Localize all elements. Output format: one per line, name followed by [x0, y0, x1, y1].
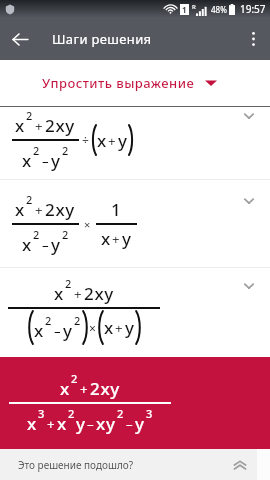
staticText: 2: [71, 371, 78, 386]
staticText: 1: [182, 4, 187, 15]
staticText: 2xy: [45, 198, 76, 221]
staticText: x: [54, 282, 64, 305]
staticText: y: [125, 316, 135, 339]
staticText: x: [104, 316, 114, 339]
staticText: +: [80, 380, 89, 398]
staticText: +: [112, 230, 121, 248]
staticText: y: [51, 233, 61, 256]
staticText: 2xy: [45, 114, 76, 137]
button[interactable]: x: [0, 357, 270, 449]
staticText: 1: [111, 198, 122, 221]
staticText: x: [97, 129, 107, 152]
staticText: +: [47, 415, 56, 433]
staticText: –: [126, 415, 134, 433]
staticText: x: [27, 412, 37, 435]
staticText: Это решение подошло?: [18, 458, 134, 472]
staticText: x: [34, 319, 44, 342]
staticText: x: [15, 198, 25, 221]
staticText: Упростить выражение: [42, 74, 195, 92]
staticText: +: [108, 132, 117, 150]
button[interactable]: Back: [0, 19, 40, 59]
staticText: +: [35, 117, 44, 135]
staticText: –: [42, 152, 50, 170]
staticText: ×: [84, 217, 91, 232]
staticText: y: [76, 412, 86, 435]
staticText: +: [74, 285, 83, 303]
staticText: x: [60, 377, 70, 400]
staticText: +: [115, 319, 124, 337]
staticText: –: [42, 236, 50, 254]
staticText: 48%: [211, 4, 227, 15]
staticText: 2: [26, 192, 33, 207]
staticText: –: [87, 415, 95, 433]
staticText: y: [63, 319, 73, 342]
staticText: 2: [65, 276, 72, 291]
staticText: 3: [146, 406, 153, 421]
staticText: 2: [45, 313, 52, 328]
staticText: y: [135, 412, 145, 435]
button[interactable]: Expand: [225, 450, 255, 480]
button[interactable]: More options: [236, 22, 270, 56]
staticText: Шаги решения: [52, 30, 152, 48]
staticText: 2: [33, 227, 40, 242]
staticText: y: [51, 149, 61, 172]
staticText: 2xy: [90, 377, 121, 400]
button[interactable]: x: [0, 268, 270, 357]
staticText: ÷: [82, 132, 89, 148]
staticText: x: [101, 227, 111, 250]
staticText: 2: [68, 406, 75, 421]
staticText: 3: [38, 406, 45, 421]
staticText: R: [192, 3, 196, 11]
staticText: +: [35, 201, 44, 219]
button[interactable]: x: [0, 180, 270, 267]
button[interactable]: Упростить выражение: [0, 60, 270, 106]
staticText: 2: [26, 108, 33, 123]
staticText: 2xy: [84, 282, 115, 305]
staticText: x: [57, 412, 67, 435]
button[interactable]: Это решение подошло?: [0, 449, 257, 480]
button[interactable]: Expand step: [242, 109, 256, 123]
staticText: 2: [33, 143, 40, 158]
staticText: y: [118, 129, 128, 152]
button[interactable]: Expand step: [242, 194, 256, 208]
staticText: y: [122, 227, 132, 250]
staticText: 2: [62, 143, 69, 158]
staticText: 2: [62, 227, 69, 242]
staticText: 2: [117, 406, 124, 421]
staticText: –: [54, 322, 62, 340]
button[interactable]: Expand step: [242, 279, 256, 293]
staticText: ×: [89, 320, 97, 336]
staticText: x: [22, 149, 32, 172]
staticText: 19:57: [240, 2, 266, 16]
staticText: x: [15, 114, 25, 137]
staticText: xy: [96, 412, 116, 435]
staticText: x: [22, 233, 32, 256]
button[interactable]: x: [0, 107, 270, 179]
staticText: 2: [74, 313, 81, 328]
